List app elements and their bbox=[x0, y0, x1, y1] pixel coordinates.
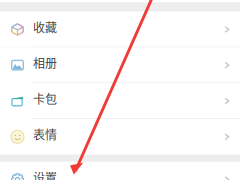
staticText: 相册 bbox=[33, 54, 57, 71]
staticText: 卡包 bbox=[33, 90, 57, 107]
button[interactable]: 表情 bbox=[0, 119, 240, 155]
staticText: 设置 bbox=[33, 168, 57, 180]
staticText: 收藏 bbox=[33, 18, 57, 36]
button[interactable]: 收藏 bbox=[0, 11, 240, 47]
staticText: 表情 bbox=[33, 126, 57, 143]
button[interactable]: 相册 bbox=[0, 47, 240, 83]
button[interactable]: 卡包 bbox=[0, 83, 240, 119]
button[interactable]: 设置 bbox=[0, 162, 240, 180]
